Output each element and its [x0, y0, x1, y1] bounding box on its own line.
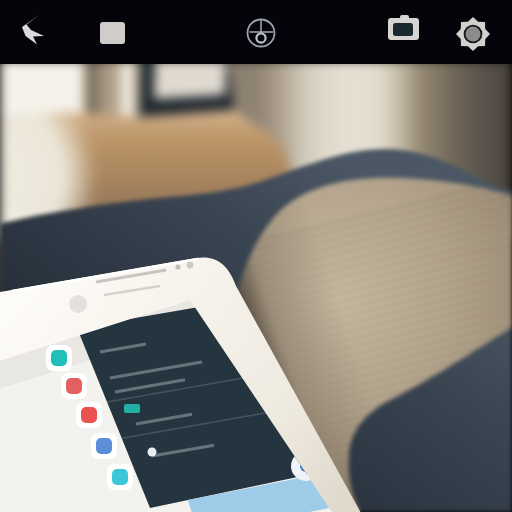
- button[interactable]: Camera: [379, 6, 431, 58]
- button[interactable]: Flash: [14, 6, 66, 58]
- button[interactable]: Settings: [448, 6, 500, 58]
- button[interactable]: Stop: [86, 6, 138, 58]
- button[interactable]: Timer: [235, 6, 287, 58]
